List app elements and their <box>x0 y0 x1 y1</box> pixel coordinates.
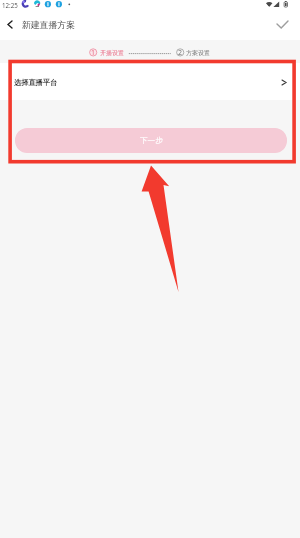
staticText: 方案设置 <box>186 49 210 57</box>
button[interactable]: Back <box>0 13 19 36</box>
staticText: 12:25 <box>2 1 18 9</box>
button[interactable]: 下一步 <box>15 128 287 153</box>
button[interactable]: 选择直播平台 <box>0 63 300 100</box>
staticText: 选择直播平台 <box>14 78 58 87</box>
staticText: 2 <box>178 48 183 56</box>
staticText: 1 <box>91 48 96 56</box>
staticText: 下一步 <box>140 136 163 146</box>
staticText: 开播设置 <box>100 49 124 57</box>
button[interactable]: Confirm <box>271 13 294 36</box>
staticText: 新建直播方案 <box>22 20 75 31</box>
